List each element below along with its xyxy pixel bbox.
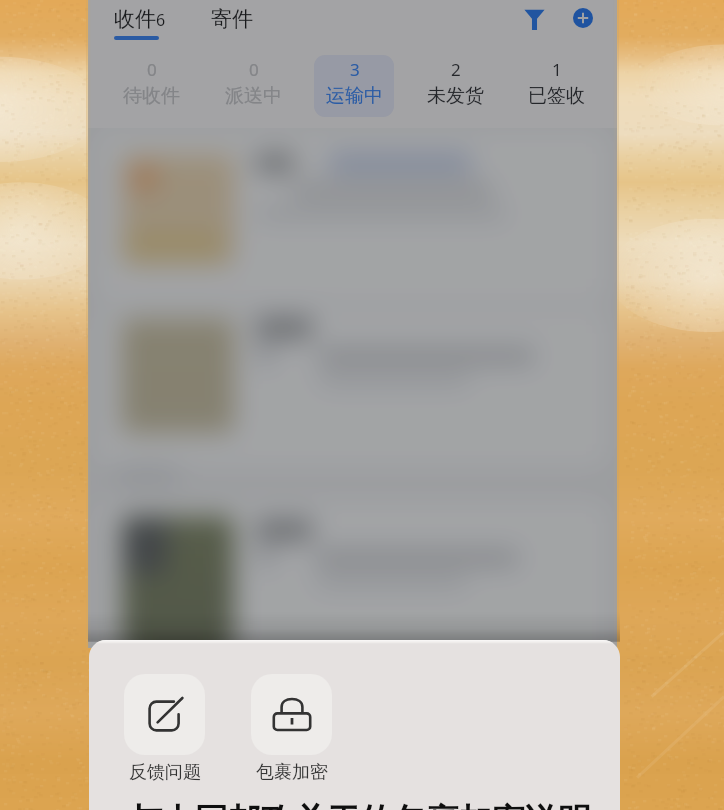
button[interactable]: 收件	[114, 6, 166, 32]
staticText: 1	[552, 58, 562, 81]
button[interactable]: Filter	[516, 1, 552, 37]
button[interactable]: 包裹加密	[251, 674, 332, 784]
staticText: 已签收	[528, 84, 585, 108]
staticText: 6	[156, 9, 166, 31]
staticText: 反馈问题	[129, 761, 201, 784]
staticText: 与中国邮政关于的包裹加密说明	[129, 800, 591, 810]
staticText: 运输中	[326, 84, 383, 108]
staticText: 0	[147, 58, 157, 81]
staticText: 0	[249, 58, 259, 81]
button[interactable]: Add package	[565, 0, 601, 36]
button[interactable]: 3	[314, 55, 394, 117]
staticText: 包裹加密	[256, 761, 328, 784]
button[interactable]: 反馈问题	[124, 674, 205, 784]
button[interactable]: 0	[111, 55, 191, 117]
staticText: 收件	[114, 6, 156, 32]
button[interactable]: 2	[415, 55, 495, 117]
staticText: 派送中	[225, 84, 282, 108]
staticText: 寄件	[211, 6, 253, 32]
staticText: 3	[350, 58, 360, 81]
button[interactable]: 1	[516, 55, 596, 117]
button[interactable]: 0	[213, 55, 293, 117]
staticText: 待收件	[123, 84, 180, 108]
staticText: 2	[451, 58, 461, 81]
button[interactable]: 寄件	[211, 6, 253, 32]
staticText: 未发货	[427, 84, 484, 108]
